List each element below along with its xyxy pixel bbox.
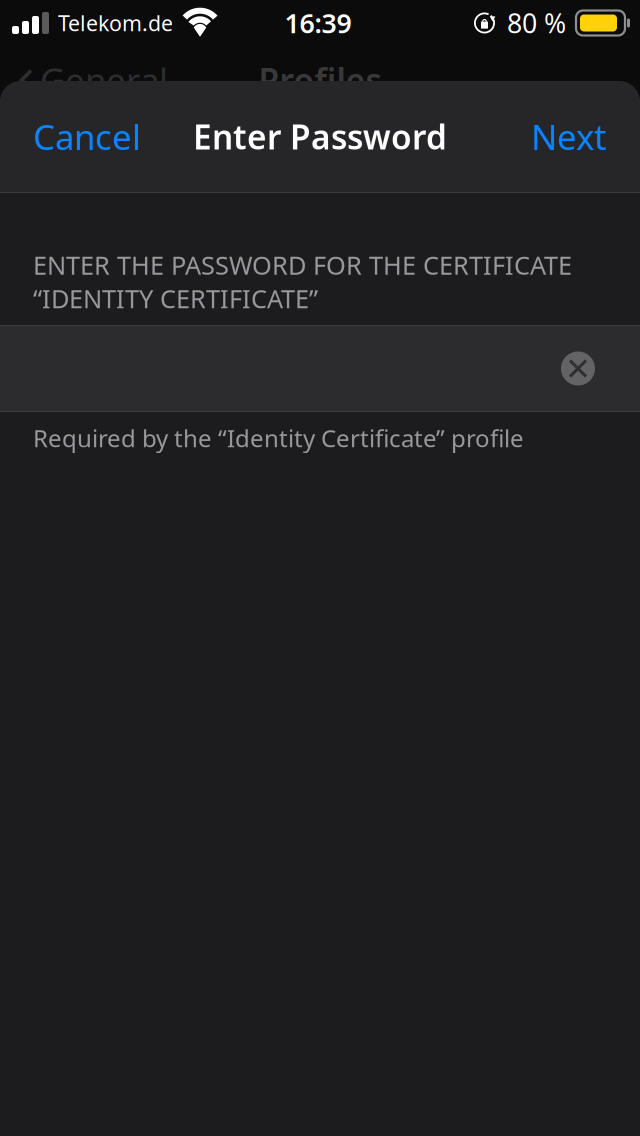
button[interactable]: Next — [509, 81, 640, 192]
staticText: Enter Password — [193, 114, 447, 159]
staticText: Next — [531, 113, 607, 159]
staticText: 16:39 — [284, 5, 351, 41]
staticText: Telekom.de — [58, 9, 173, 37]
button[interactable]: Cancel — [0, 81, 163, 192]
staticText: 80 % — [507, 5, 566, 41]
button[interactable]: Clear text — [543, 326, 613, 411]
staticText: ENTER THE PASSWORD FOR THE CERTIFICATE “… — [33, 248, 572, 315]
staticText: General — [40, 57, 168, 103]
staticText: Cancel — [33, 113, 141, 159]
staticText: Required by the “Identity Certificate” p… — [33, 422, 524, 454]
staticText: Profiles — [258, 58, 381, 102]
button[interactable]: Password — [0, 326, 640, 411]
